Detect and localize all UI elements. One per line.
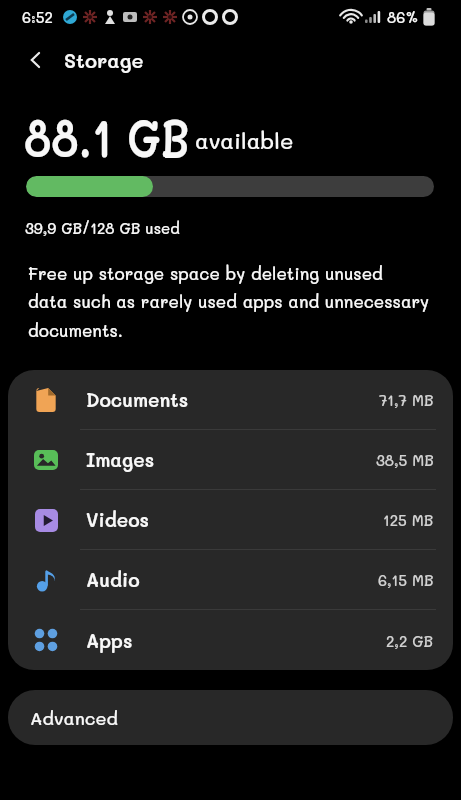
staticText: Advanced xyxy=(30,706,118,729)
staticText: 86% xyxy=(387,7,419,26)
staticText: Documents xyxy=(86,387,189,412)
staticText: 6,15 MB xyxy=(378,570,434,589)
staticText: Apps xyxy=(86,628,133,653)
staticText: Audio xyxy=(86,567,140,592)
staticText: Videos xyxy=(86,507,150,532)
staticText: 88.1 GB xyxy=(24,101,190,158)
button[interactable]: Images xyxy=(8,430,453,489)
staticText: 6:52 xyxy=(22,7,53,26)
staticText: 39,9 GB/128 GB used xyxy=(25,218,180,237)
button[interactable] xyxy=(18,42,54,78)
button[interactable]: Videos xyxy=(8,490,453,549)
button[interactable]: Apps xyxy=(8,610,453,670)
staticText: 125 MB xyxy=(383,510,434,529)
staticText: 71,7 MB xyxy=(379,390,434,409)
staticText: 2,2 GB xyxy=(386,631,434,650)
staticText: Images xyxy=(86,447,155,472)
staticText: Free up storage space by deleting unused… xyxy=(28,262,430,342)
button[interactable]: Audio xyxy=(8,550,453,609)
staticText: 38,5 MB xyxy=(376,450,434,469)
staticText: available xyxy=(195,126,294,155)
button[interactable]: Advanced xyxy=(8,690,453,745)
button[interactable]: Documents xyxy=(8,370,453,429)
staticText: Storage xyxy=(64,47,144,73)
